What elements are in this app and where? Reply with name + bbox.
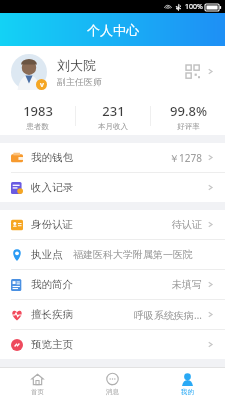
staticText: 99.8% xyxy=(170,102,207,120)
button[interactable]: 231 xyxy=(76,102,150,131)
staticText: V xyxy=(40,81,44,89)
button[interactable]: 身份认证 xyxy=(0,210,225,239)
button[interactable]: 1983 xyxy=(0,102,75,131)
button[interactable]: 擅长疾病 xyxy=(0,300,225,329)
staticText: 本月收入 xyxy=(98,122,128,131)
staticText: 执业点 xyxy=(31,248,63,261)
button[interactable]: 我的钱包 xyxy=(0,143,225,172)
staticText: 患者数 xyxy=(26,122,49,131)
staticText: 100% xyxy=(185,2,203,12)
staticText: 我的简介 xyxy=(31,278,73,291)
staticText: 个人中心 xyxy=(87,22,139,38)
button[interactable]: 99.8% xyxy=(151,102,225,131)
button[interactable]: 消息 xyxy=(75,368,150,400)
button[interactable]: 我的简介 xyxy=(0,270,225,299)
staticText: 231 xyxy=(102,102,125,120)
staticText: 擅长疾病 xyxy=(31,308,73,321)
staticText: 好评率 xyxy=(177,122,200,131)
staticText: ￥1278 xyxy=(169,151,202,165)
staticText: 身份认证 xyxy=(31,218,73,231)
button[interactable]: 我的 xyxy=(150,368,225,400)
button[interactable]: 预览主页 xyxy=(0,330,225,359)
button[interactable]: 执业点 xyxy=(0,240,225,269)
button[interactable]: 首页 xyxy=(0,368,75,400)
staticText: 呼吸系统疾病… xyxy=(134,308,202,322)
button[interactable]: 收入记录 xyxy=(0,173,225,202)
staticText: 福建医科大学附属第一医院 xyxy=(73,248,193,261)
staticText: 副主任医师 xyxy=(57,76,102,87)
button[interactable]: V xyxy=(0,46,225,97)
staticText: 消息 xyxy=(106,388,119,396)
staticText: 1983 xyxy=(23,102,53,120)
staticText: 预览主页 xyxy=(31,338,73,351)
staticText: 待认证 xyxy=(172,218,202,231)
staticText: 未填写 xyxy=(172,278,202,291)
staticText: 首页 xyxy=(31,388,44,396)
staticText: 刘大院 xyxy=(57,57,96,73)
button[interactable]: 二维码 xyxy=(186,65,200,79)
staticText: 收入记录 xyxy=(31,181,73,194)
staticText: 我的 xyxy=(181,388,194,396)
staticText: 我的钱包 xyxy=(31,151,73,164)
